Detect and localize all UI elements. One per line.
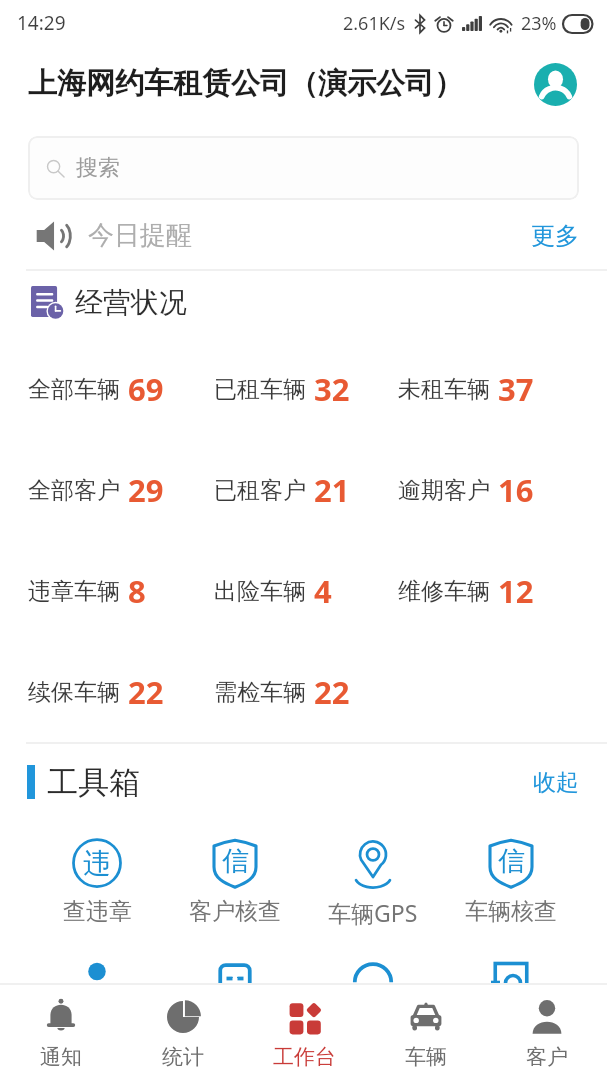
button[interactable]: 已租客户: [214, 469, 350, 511]
button[interactable]: 收起: [529, 764, 583, 801]
staticText: 已租车辆: [214, 375, 306, 404]
staticText: 8: [128, 570, 146, 612]
staticText: 16: [498, 469, 534, 511]
staticText: 经营状况: [75, 285, 187, 320]
staticText: 21: [314, 469, 350, 511]
staticText: 全部车辆: [28, 375, 120, 404]
staticText: 搜索: [76, 154, 120, 182]
button[interactable]: 工具: [304, 962, 442, 1012]
staticText: 客户: [526, 1044, 568, 1070]
staticText: 车辆GPS: [328, 897, 418, 928]
staticText: 2.61K/s: [343, 11, 406, 36]
button[interactable]: 维修车辆: [398, 570, 534, 612]
staticText: 统计: [162, 1044, 204, 1070]
button[interactable]: 全部客户: [28, 469, 164, 511]
staticText: 29: [128, 469, 164, 511]
button[interactable]: 需检车辆: [214, 671, 350, 713]
button[interactable]: 车辆: [365, 985, 486, 1080]
staticText: 更多: [531, 221, 579, 251]
staticText: 违章车辆: [28, 577, 120, 606]
staticText: 22: [128, 671, 164, 713]
button[interactable]: 搜索: [28, 136, 579, 200]
staticText: 车辆核查: [465, 897, 557, 926]
button[interactable]: 工具: [166, 962, 304, 1012]
staticText: 查违章: [63, 897, 132, 926]
staticText: 14:29: [17, 10, 66, 36]
staticText: 车辆: [405, 1044, 447, 1070]
staticText: 上海网约车租赁公司（演示公司）: [28, 65, 463, 102]
staticText: 12: [498, 570, 534, 612]
staticText: 37: [498, 368, 534, 410]
button[interactable]: 逾期客户: [398, 469, 534, 511]
button[interactable]: Account: [534, 63, 577, 106]
button[interactable]: 更多: [527, 217, 583, 255]
staticText: 今日提醒: [88, 219, 192, 252]
button[interactable]: 续保车辆: [28, 671, 164, 713]
staticText: 收起: [533, 768, 579, 797]
button[interactable]: 统计: [122, 985, 244, 1080]
staticText: 续保车辆: [28, 678, 120, 707]
staticText: 23%: [521, 11, 557, 36]
button[interactable]: 全部车辆: [28, 368, 164, 410]
staticText: 逾期客户: [398, 476, 490, 505]
staticText: 22: [314, 671, 350, 713]
staticText: 需检车辆: [214, 678, 306, 707]
staticText: 违: [83, 846, 111, 881]
button[interactable]: 工具: [442, 962, 580, 1012]
button[interactable]: 车辆核查: [442, 838, 580, 926]
staticText: 32: [314, 368, 350, 410]
staticText: 通知: [40, 1044, 82, 1070]
button[interactable]: 查违章: [28, 838, 166, 926]
staticText: 信: [222, 844, 249, 878]
button[interactable]: 工具: [28, 962, 166, 1012]
staticText: 工作台: [273, 1044, 336, 1070]
staticText: 工具箱: [47, 763, 140, 802]
staticText: 已租客户: [214, 476, 306, 505]
button[interactable]: 通知: [0, 985, 122, 1080]
staticText: 出险车辆: [214, 577, 306, 606]
staticText: 全部客户: [28, 476, 120, 505]
staticText: 维修车辆: [398, 577, 490, 606]
button[interactable]: 已租车辆: [214, 368, 350, 410]
button[interactable]: 违章车辆: [28, 570, 146, 612]
staticText: - -: [229, 967, 241, 985]
button[interactable]: 客户核查: [166, 838, 304, 926]
staticText: 信: [498, 844, 525, 878]
staticText: 客户核查: [189, 897, 281, 926]
button[interactable]: 工作台: [244, 985, 365, 1080]
button[interactable]: 客户: [486, 985, 607, 1080]
staticText: 4: [314, 570, 332, 612]
staticText: 未租车辆: [398, 375, 490, 404]
button[interactable]: 出险车辆: [214, 570, 332, 612]
button[interactable]: 车辆GPS: [304, 838, 442, 928]
staticText: 69: [128, 368, 164, 410]
button[interactable]: 未租车辆: [398, 368, 534, 410]
